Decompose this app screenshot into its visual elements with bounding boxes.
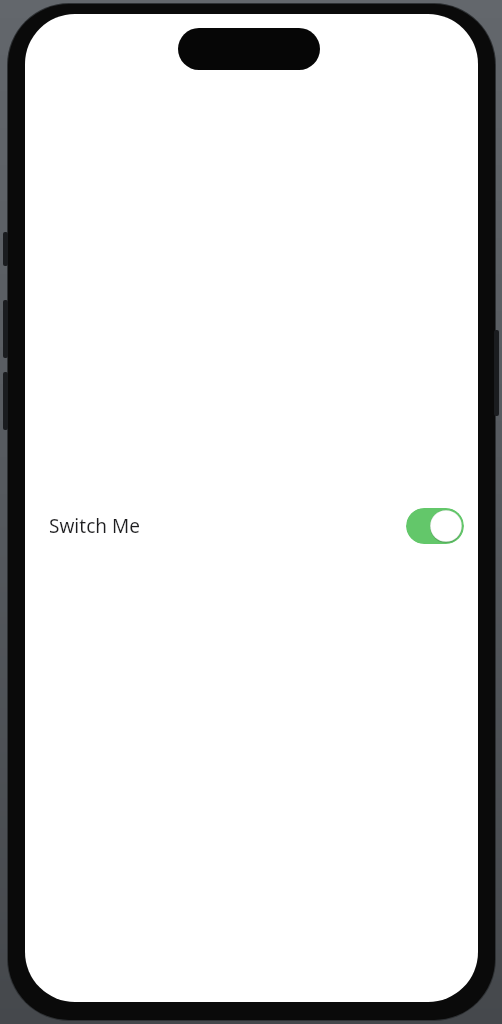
staticText: Switch Me [49,513,140,539]
button[interactable]: Switch Me toggle [406,508,464,544]
button[interactable]: Switch Me [25,495,478,557]
